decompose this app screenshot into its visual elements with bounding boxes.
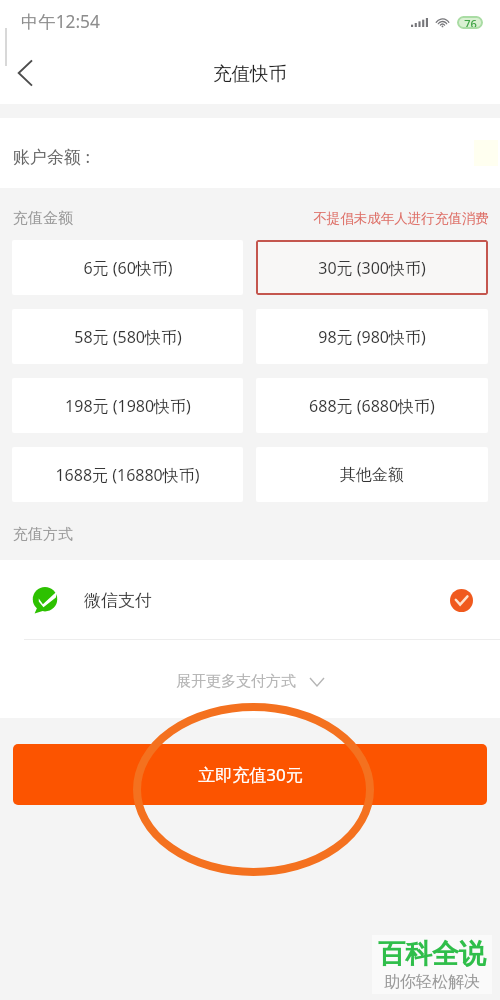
button[interactable]: 展开更多支付方式 [176,672,324,691]
staticText: 充值金额 [13,209,73,228]
staticText: 充值快币 [213,62,287,85]
button[interactable]: 98元 (980快币) [256,309,488,364]
staticText: 76 [464,16,477,29]
button[interactable]: Back [0,48,50,98]
button[interactable]: 198元 (1980快币) [12,378,243,433]
staticText: 58元 (580快币) [74,326,182,348]
button[interactable]: 6元 (60快币) [12,240,243,295]
staticText: 98元 (980快币) [318,326,426,348]
staticText: 1688元 (16880快币) [55,464,200,486]
staticText: 充值方式 [13,525,73,544]
staticText: 30元 (300快币) [318,257,426,279]
button[interactable]: 微信支付 [0,560,500,640]
staticText: 立即充值30元 [198,763,303,786]
staticText: 助你轻松解决 [384,972,480,992]
staticText: 不提倡未成年人进行充值消费 [313,210,489,227]
button[interactable]: 30元 (300快币) [256,240,488,295]
staticText: 展开更多支付方式 [176,672,296,691]
staticText: 百科全说 [378,937,486,971]
button[interactable]: 其他金额 [256,447,488,502]
button[interactable]: 58元 (580快币) [12,309,243,364]
staticText: 中午12:54 [21,10,100,34]
button[interactable]: 688元 (6880快币) [256,378,488,433]
staticText: 其他金额 [340,465,404,485]
staticText: 6元 (60快币) [83,257,173,279]
button[interactable]: 立即充值30元 [13,744,487,805]
staticText: 微信支付 [84,590,152,611]
staticText: 账户余额 : [13,145,90,168]
button[interactable]: 1688元 (16880快币) [12,447,243,502]
staticText: 198元 (1980快币) [65,395,191,417]
staticText: 688元 (6880快币) [309,395,435,417]
